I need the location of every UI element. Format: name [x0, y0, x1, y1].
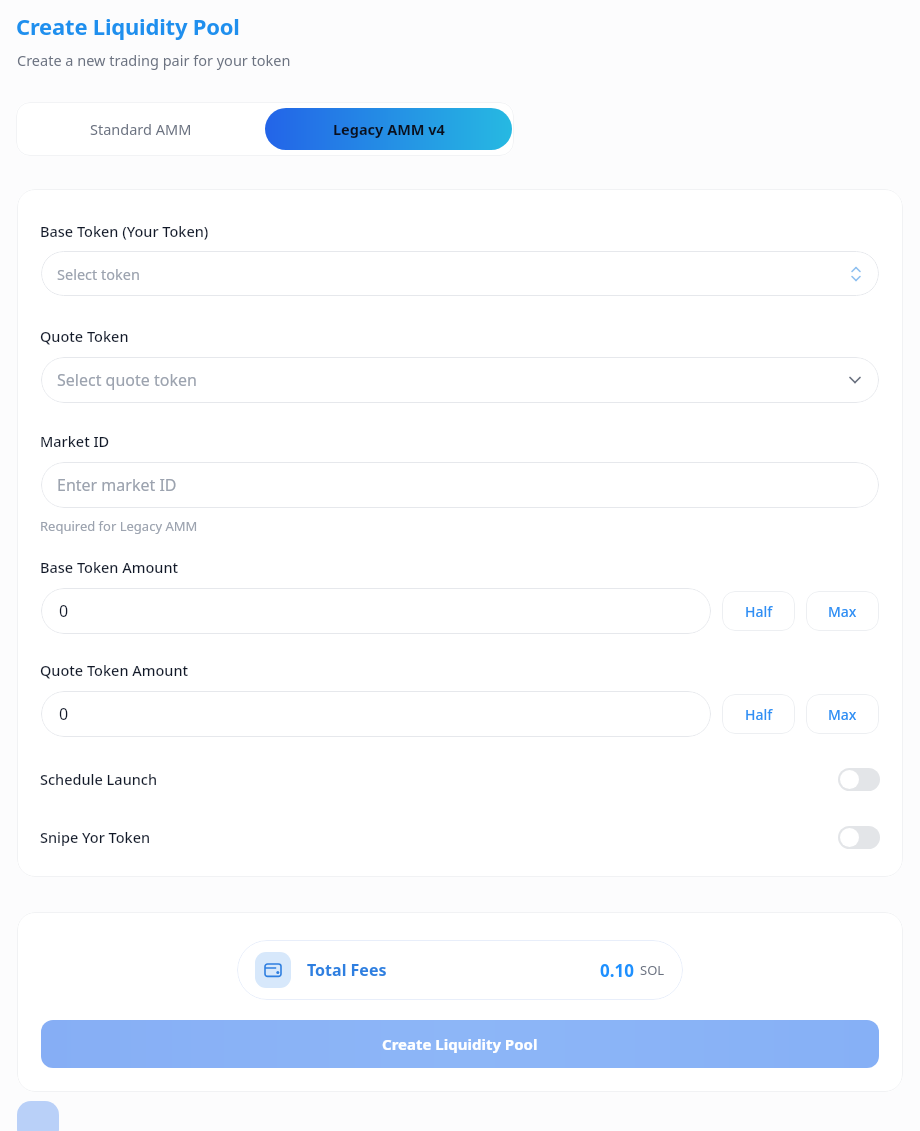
staticText: Legacy AMM v4: [333, 119, 445, 139]
button[interactable]: Half: [722, 694, 795, 734]
button[interactable]: Create Liquidity Pool: [41, 1020, 879, 1068]
staticText: Create Liquidity Pool: [16, 11, 240, 41]
button[interactable]: Snipe Yor Token: [40, 822, 880, 852]
staticText: Create a new trading pair for your token: [17, 50, 291, 70]
staticText: Half: [745, 602, 773, 621]
other: Snipe Yor Token: [838, 826, 880, 849]
staticText: Total Fees: [307, 959, 387, 981]
staticText: Max: [828, 705, 857, 724]
button[interactable]: Enter market ID: [41, 462, 879, 508]
staticText: Standard AMM: [90, 119, 192, 139]
button[interactable]: Legacy AMM v4: [265, 108, 512, 150]
button[interactable]: Schedule Launch: [40, 764, 880, 794]
staticText: Market ID: [40, 431, 110, 451]
button[interactable]: 0: [41, 588, 711, 634]
button[interactable]: Select token: [41, 251, 879, 296]
other: Open dropdown: [847, 372, 863, 388]
button[interactable]: Half: [722, 591, 795, 631]
button[interactable]: Max: [806, 694, 879, 734]
button[interactable]: Total Fees: [237, 940, 683, 1000]
button[interactable]: Max: [806, 591, 879, 631]
staticText: Schedule Launch: [40, 769, 158, 789]
button[interactable]: Select quote token: [41, 357, 879, 403]
other: Select token: [849, 267, 863, 281]
staticText: Snipe Yor Token: [40, 827, 151, 847]
staticText: Half: [745, 705, 773, 724]
other: Schedule Launch: [838, 768, 880, 791]
staticText: Base Token Amount: [40, 557, 179, 577]
staticText: Required for Legacy AMM: [40, 517, 198, 535]
staticText: Quote Token Amount: [40, 660, 189, 680]
staticText: Select quote token: [57, 369, 197, 391]
staticText: Select token: [57, 264, 140, 284]
staticText: Create Liquidity Pool: [382, 1034, 538, 1054]
staticText: 0.10: [600, 959, 634, 982]
button[interactable]: 0: [41, 691, 711, 737]
staticText: 0: [59, 600, 69, 622]
button[interactable]: Standard AMM: [16, 102, 265, 156]
staticText: Base Token (Your Token): [40, 221, 209, 241]
staticText: SOL: [640, 961, 665, 979]
staticText: Max: [828, 602, 857, 621]
staticText: Enter market ID: [57, 474, 177, 496]
staticText: Quote Token: [40, 326, 129, 346]
button[interactable]: Action: [17, 1101, 59, 1131]
staticText: 0: [59, 703, 69, 725]
